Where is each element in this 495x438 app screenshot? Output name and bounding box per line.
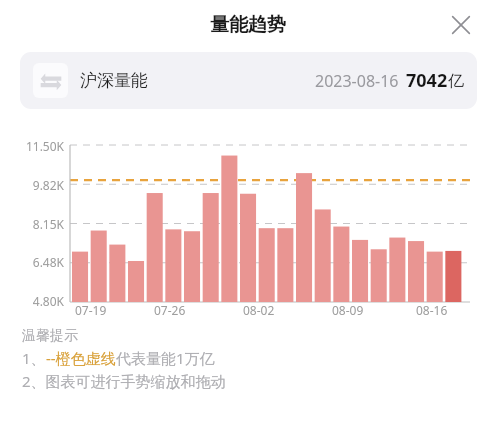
staticText: 4.80K [16,293,64,309]
staticText: 08-16 [416,302,448,318]
staticText: --橙色虚线 [46,348,116,368]
staticText: 9.82K [16,177,64,193]
staticText: 7042 [406,68,448,93]
staticText: 2、图表可进行手势缩放和拖动 [22,371,226,391]
button[interactable]: 沪深量能 [20,52,477,109]
staticText: 08-09 [332,302,364,318]
staticText: 亿 [448,71,464,91]
staticText: 沪深量能 [80,70,148,91]
staticText: 代表量能1万亿 [116,348,215,368]
staticText: 08-02 [243,302,275,318]
staticText: 量能趋势 [210,13,286,37]
staticText: 07-19 [75,302,107,318]
staticText: 1、 [22,348,46,368]
staticText: 2023-08-16 [315,70,399,92]
staticText: 07-26 [154,302,186,318]
staticText: 6.48K [16,254,64,270]
staticText: 温馨提示 [22,327,78,345]
staticText: 8.15K [16,216,64,232]
staticText: 11.50K [16,138,64,154]
button[interactable]: Close [441,5,481,45]
